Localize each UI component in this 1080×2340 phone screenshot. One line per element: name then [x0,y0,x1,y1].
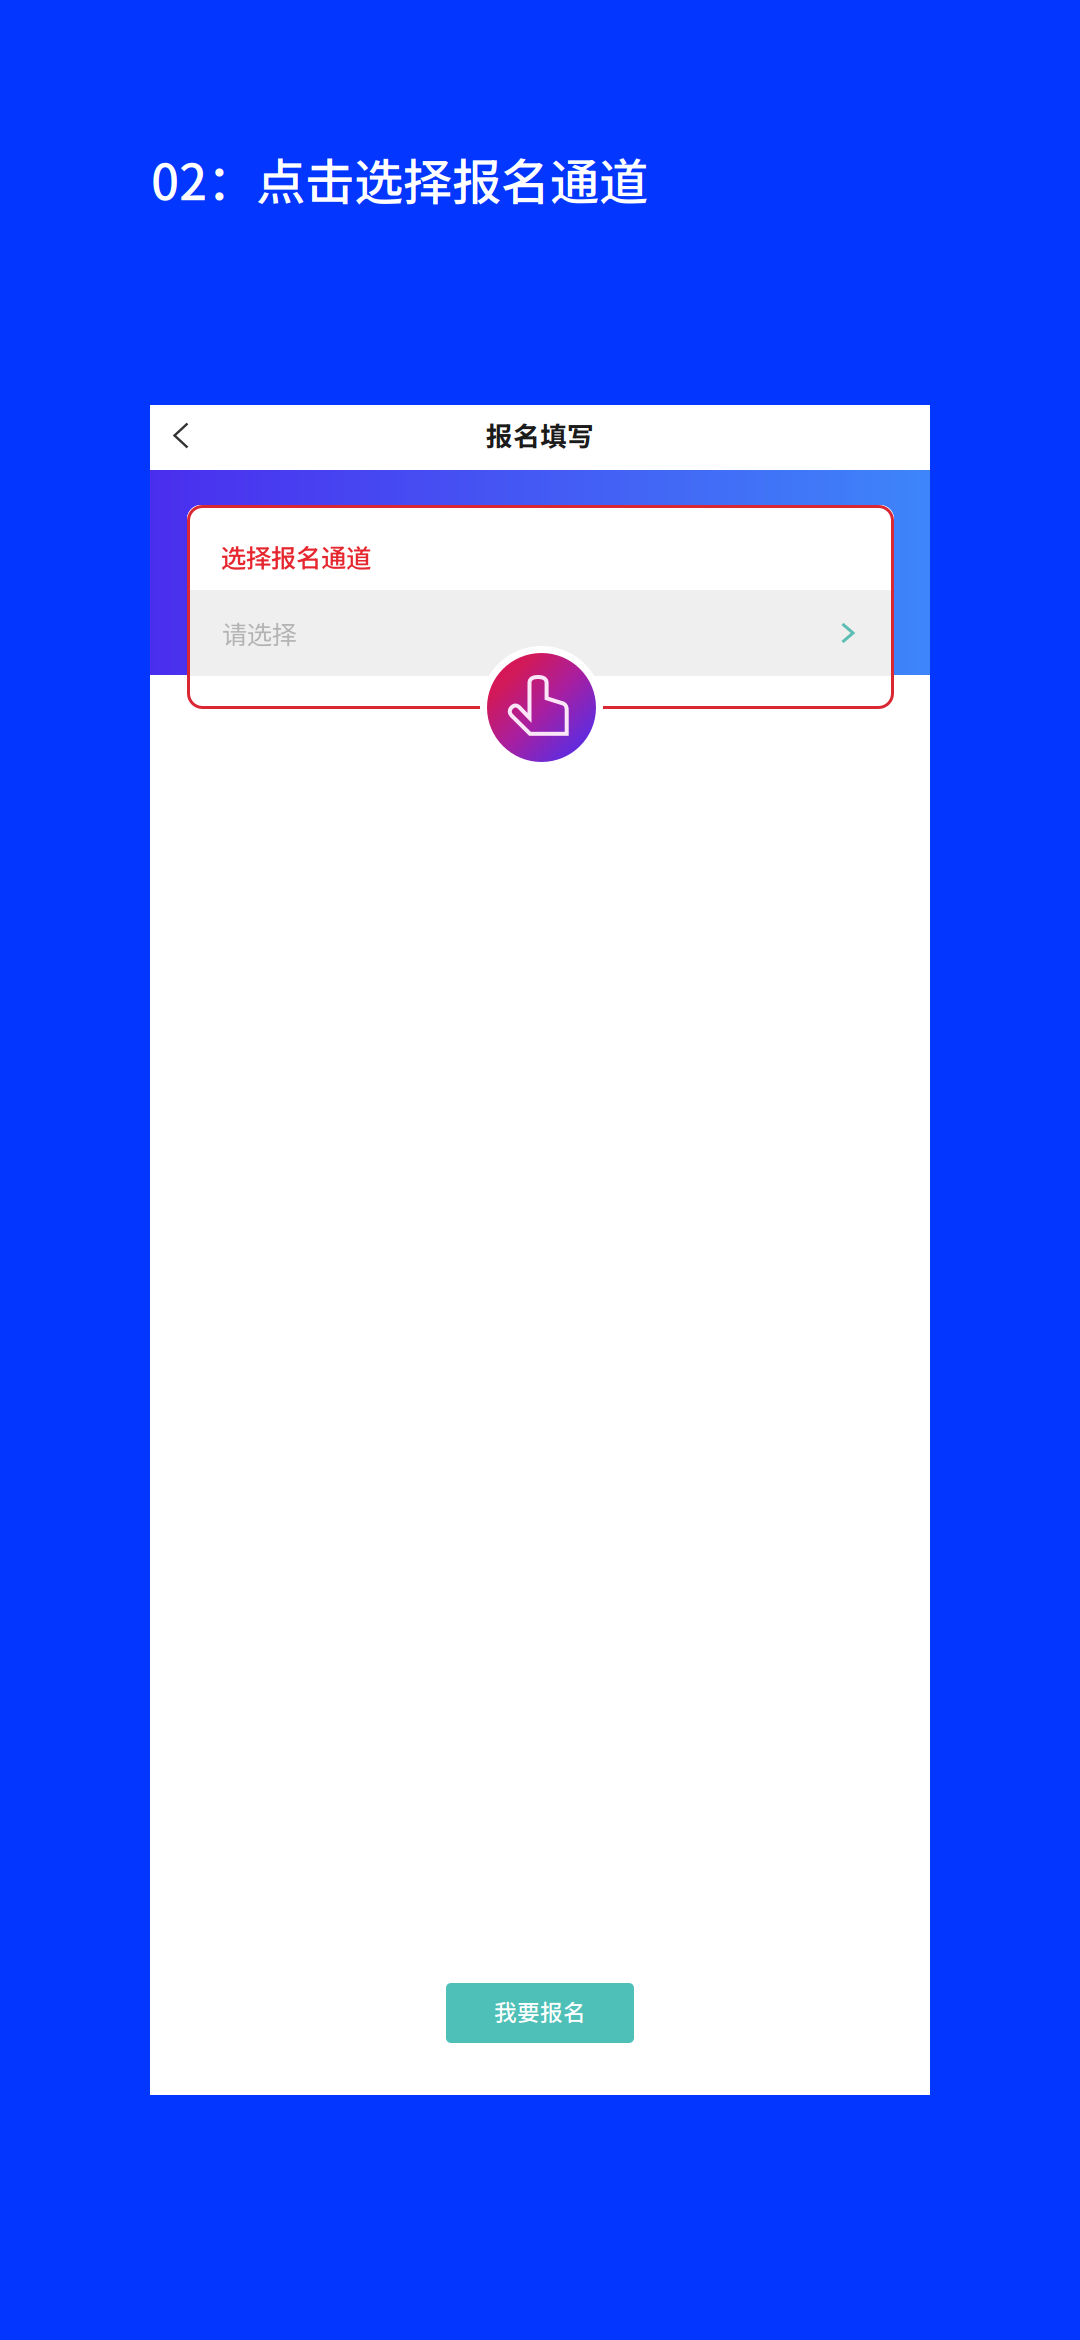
button[interactable]: 选择报名通道 [187,505,894,709]
button[interactable]: Back [150,405,212,469]
staticText: 我要报名 [494,1995,586,2027]
staticText: 报名填写 [486,415,594,454]
staticText: 请选择 [222,615,297,651]
button[interactable]: 请选择 [187,590,894,676]
staticText: 选择报名通道 [221,538,371,575]
staticText: 02：点击选择报名通道 [151,143,648,214]
button[interactable]: 我要报名 [446,1983,634,2043]
